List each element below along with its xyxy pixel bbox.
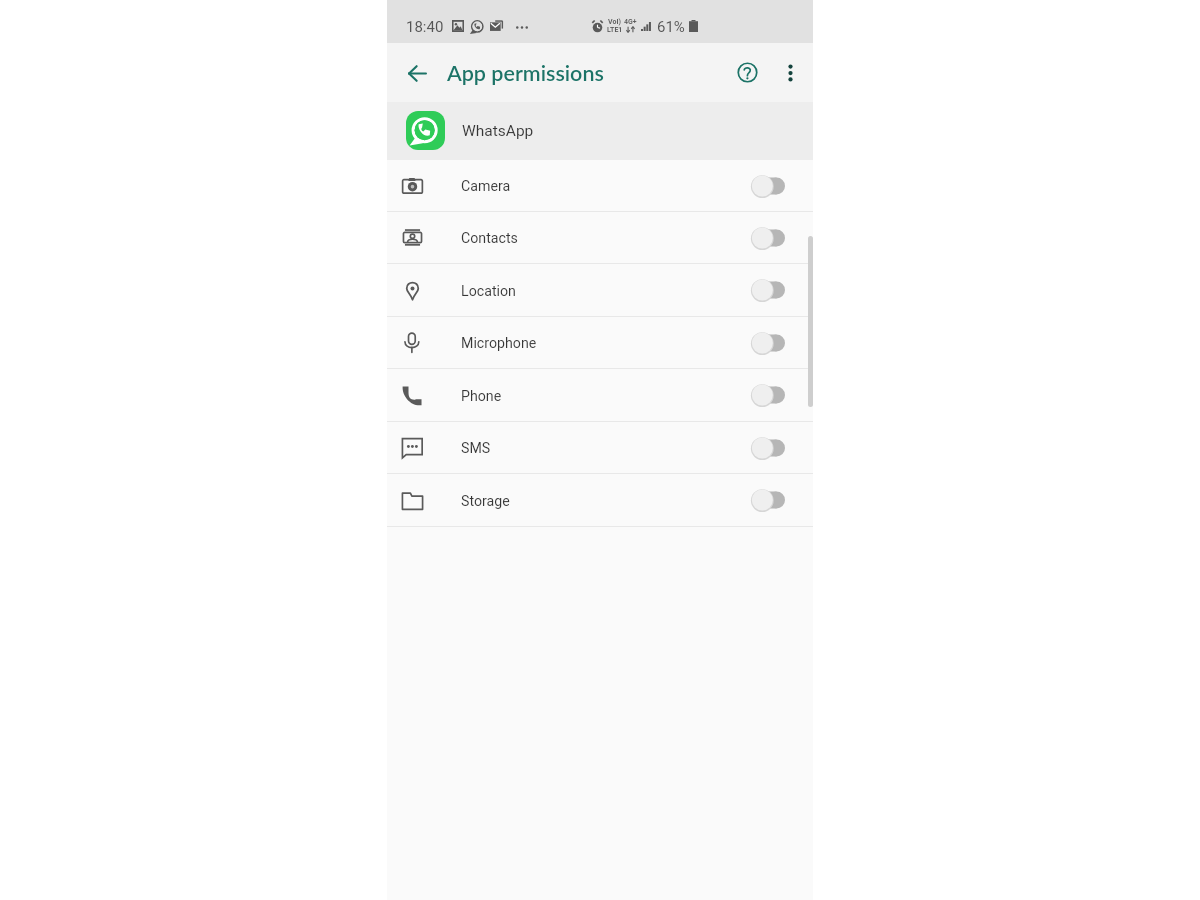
staticText: Phone bbox=[461, 388, 502, 405]
button[interactable]: Permission toggle, off bbox=[750, 275, 786, 305]
button[interactable]: Storage bbox=[387, 474, 813, 526]
button[interactable]: Camera bbox=[387, 160, 813, 211]
staticText: LTE1 bbox=[607, 26, 623, 33]
button[interactable]: Contacts bbox=[387, 212, 813, 263]
button[interactable]: Permission toggle, off bbox=[750, 223, 786, 253]
button[interactable]: Navigate up bbox=[397, 53, 437, 93]
staticText: Contacts bbox=[461, 230, 518, 247]
staticText: Microphone bbox=[461, 335, 537, 352]
staticText: VoI) bbox=[608, 18, 621, 26]
staticText: 61% bbox=[657, 18, 685, 36]
staticText: WhatsApp bbox=[462, 122, 534, 140]
button[interactable]: Permission toggle, off bbox=[750, 328, 786, 358]
staticText: Storage bbox=[461, 493, 510, 510]
staticText: App permissions bbox=[447, 60, 604, 86]
staticText: 4G+ bbox=[624, 18, 637, 26]
button[interactable]: Permission toggle, off bbox=[750, 433, 786, 463]
button[interactable]: Permission toggle, off bbox=[750, 380, 786, 410]
button[interactable]: SMS bbox=[387, 422, 813, 473]
button[interactable]: Permission toggle, off bbox=[750, 485, 786, 515]
button[interactable]: Permission toggle, off bbox=[750, 171, 786, 201]
button[interactable]: More options bbox=[769, 52, 811, 94]
staticText: SMS bbox=[461, 440, 491, 457]
button[interactable]: Location bbox=[387, 264, 813, 316]
button[interactable]: Phone bbox=[387, 369, 813, 421]
button[interactable]: WhatsApp bbox=[387, 102, 813, 160]
button[interactable]: Help bbox=[727, 52, 769, 94]
staticText: Location bbox=[461, 283, 516, 300]
staticText: 18:40 bbox=[406, 18, 444, 36]
staticText: Camera bbox=[461, 178, 511, 195]
button[interactable]: Microphone bbox=[387, 317, 813, 368]
